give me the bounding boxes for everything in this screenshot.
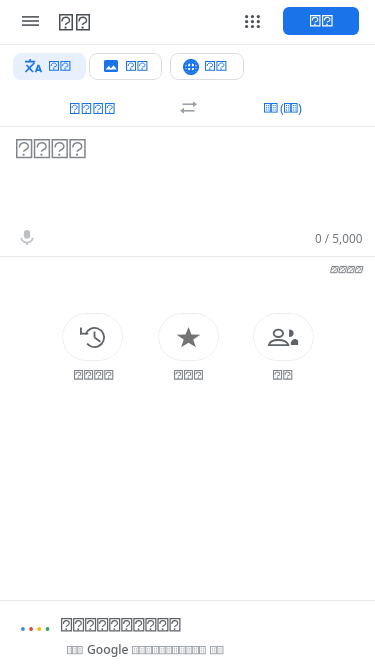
button[interactable] <box>330 266 364 273</box>
staticText: Google <box>87 641 129 658</box>
button[interactable] <box>283 7 359 35</box>
button[interactable] <box>273 370 292 380</box>
button[interactable] <box>89 53 162 80</box>
button[interactable] <box>74 370 113 380</box>
button[interactable]: Google <box>0 601 375 667</box>
button[interactable]: Main menu <box>14 5 46 37</box>
button[interactable] <box>20 91 165 125</box>
staticText: ) <box>298 99 302 117</box>
button[interactable] <box>13 53 86 80</box>
button[interactable]: Contribute <box>253 313 314 361</box>
staticText: 0 / 5,000 <box>315 230 363 246</box>
button[interactable]: Google apps <box>238 7 266 35</box>
button[interactable] <box>170 53 244 80</box>
staticText: ( <box>280 99 284 117</box>
button[interactable]: Translation history <box>62 313 123 361</box>
button[interactable]: ( <box>210 91 355 125</box>
button[interactable]: Saved translations <box>158 313 219 361</box>
button[interactable]: Voice input <box>16 226 38 248</box>
button[interactable] <box>174 370 203 380</box>
button[interactable] <box>16 139 86 158</box>
button[interactable]: Swap languages <box>180 92 197 122</box>
